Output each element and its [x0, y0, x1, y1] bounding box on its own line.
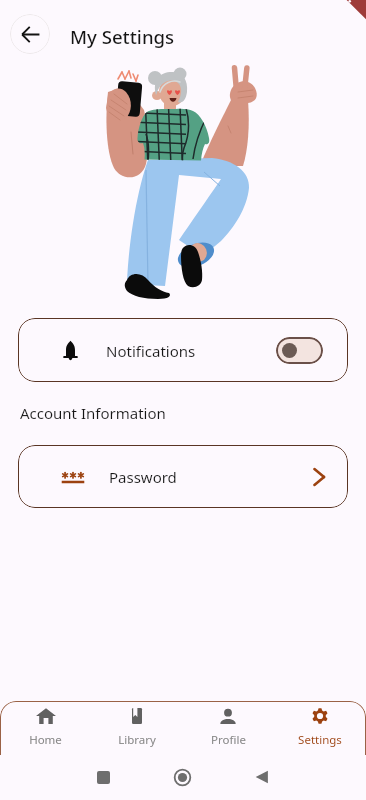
button[interactable]: Library — [91, 701, 182, 754]
button[interactable]: Back — [255, 770, 269, 784]
staticText: Settings — [298, 732, 342, 748]
staticText: My Settings — [70, 24, 175, 49]
button[interactable]: Back — [10, 14, 50, 54]
button[interactable]: Home — [0, 701, 91, 754]
staticText: Password — [109, 467, 177, 487]
button[interactable]: Settings — [274, 701, 366, 754]
button[interactable]: Notifications — [18, 318, 348, 382]
button[interactable]: Recents — [97, 771, 110, 784]
staticText: Home — [29, 732, 62, 748]
button[interactable]: Password — [18, 445, 348, 508]
staticText: Profile — [211, 732, 246, 748]
button[interactable]: Notifications toggle — [276, 337, 323, 364]
staticText: Account Information — [20, 403, 166, 423]
staticText: Notifications — [106, 341, 196, 361]
button[interactable]: Profile — [182, 701, 274, 754]
staticText: Library — [118, 732, 156, 748]
button[interactable]: Home — [174, 769, 191, 786]
